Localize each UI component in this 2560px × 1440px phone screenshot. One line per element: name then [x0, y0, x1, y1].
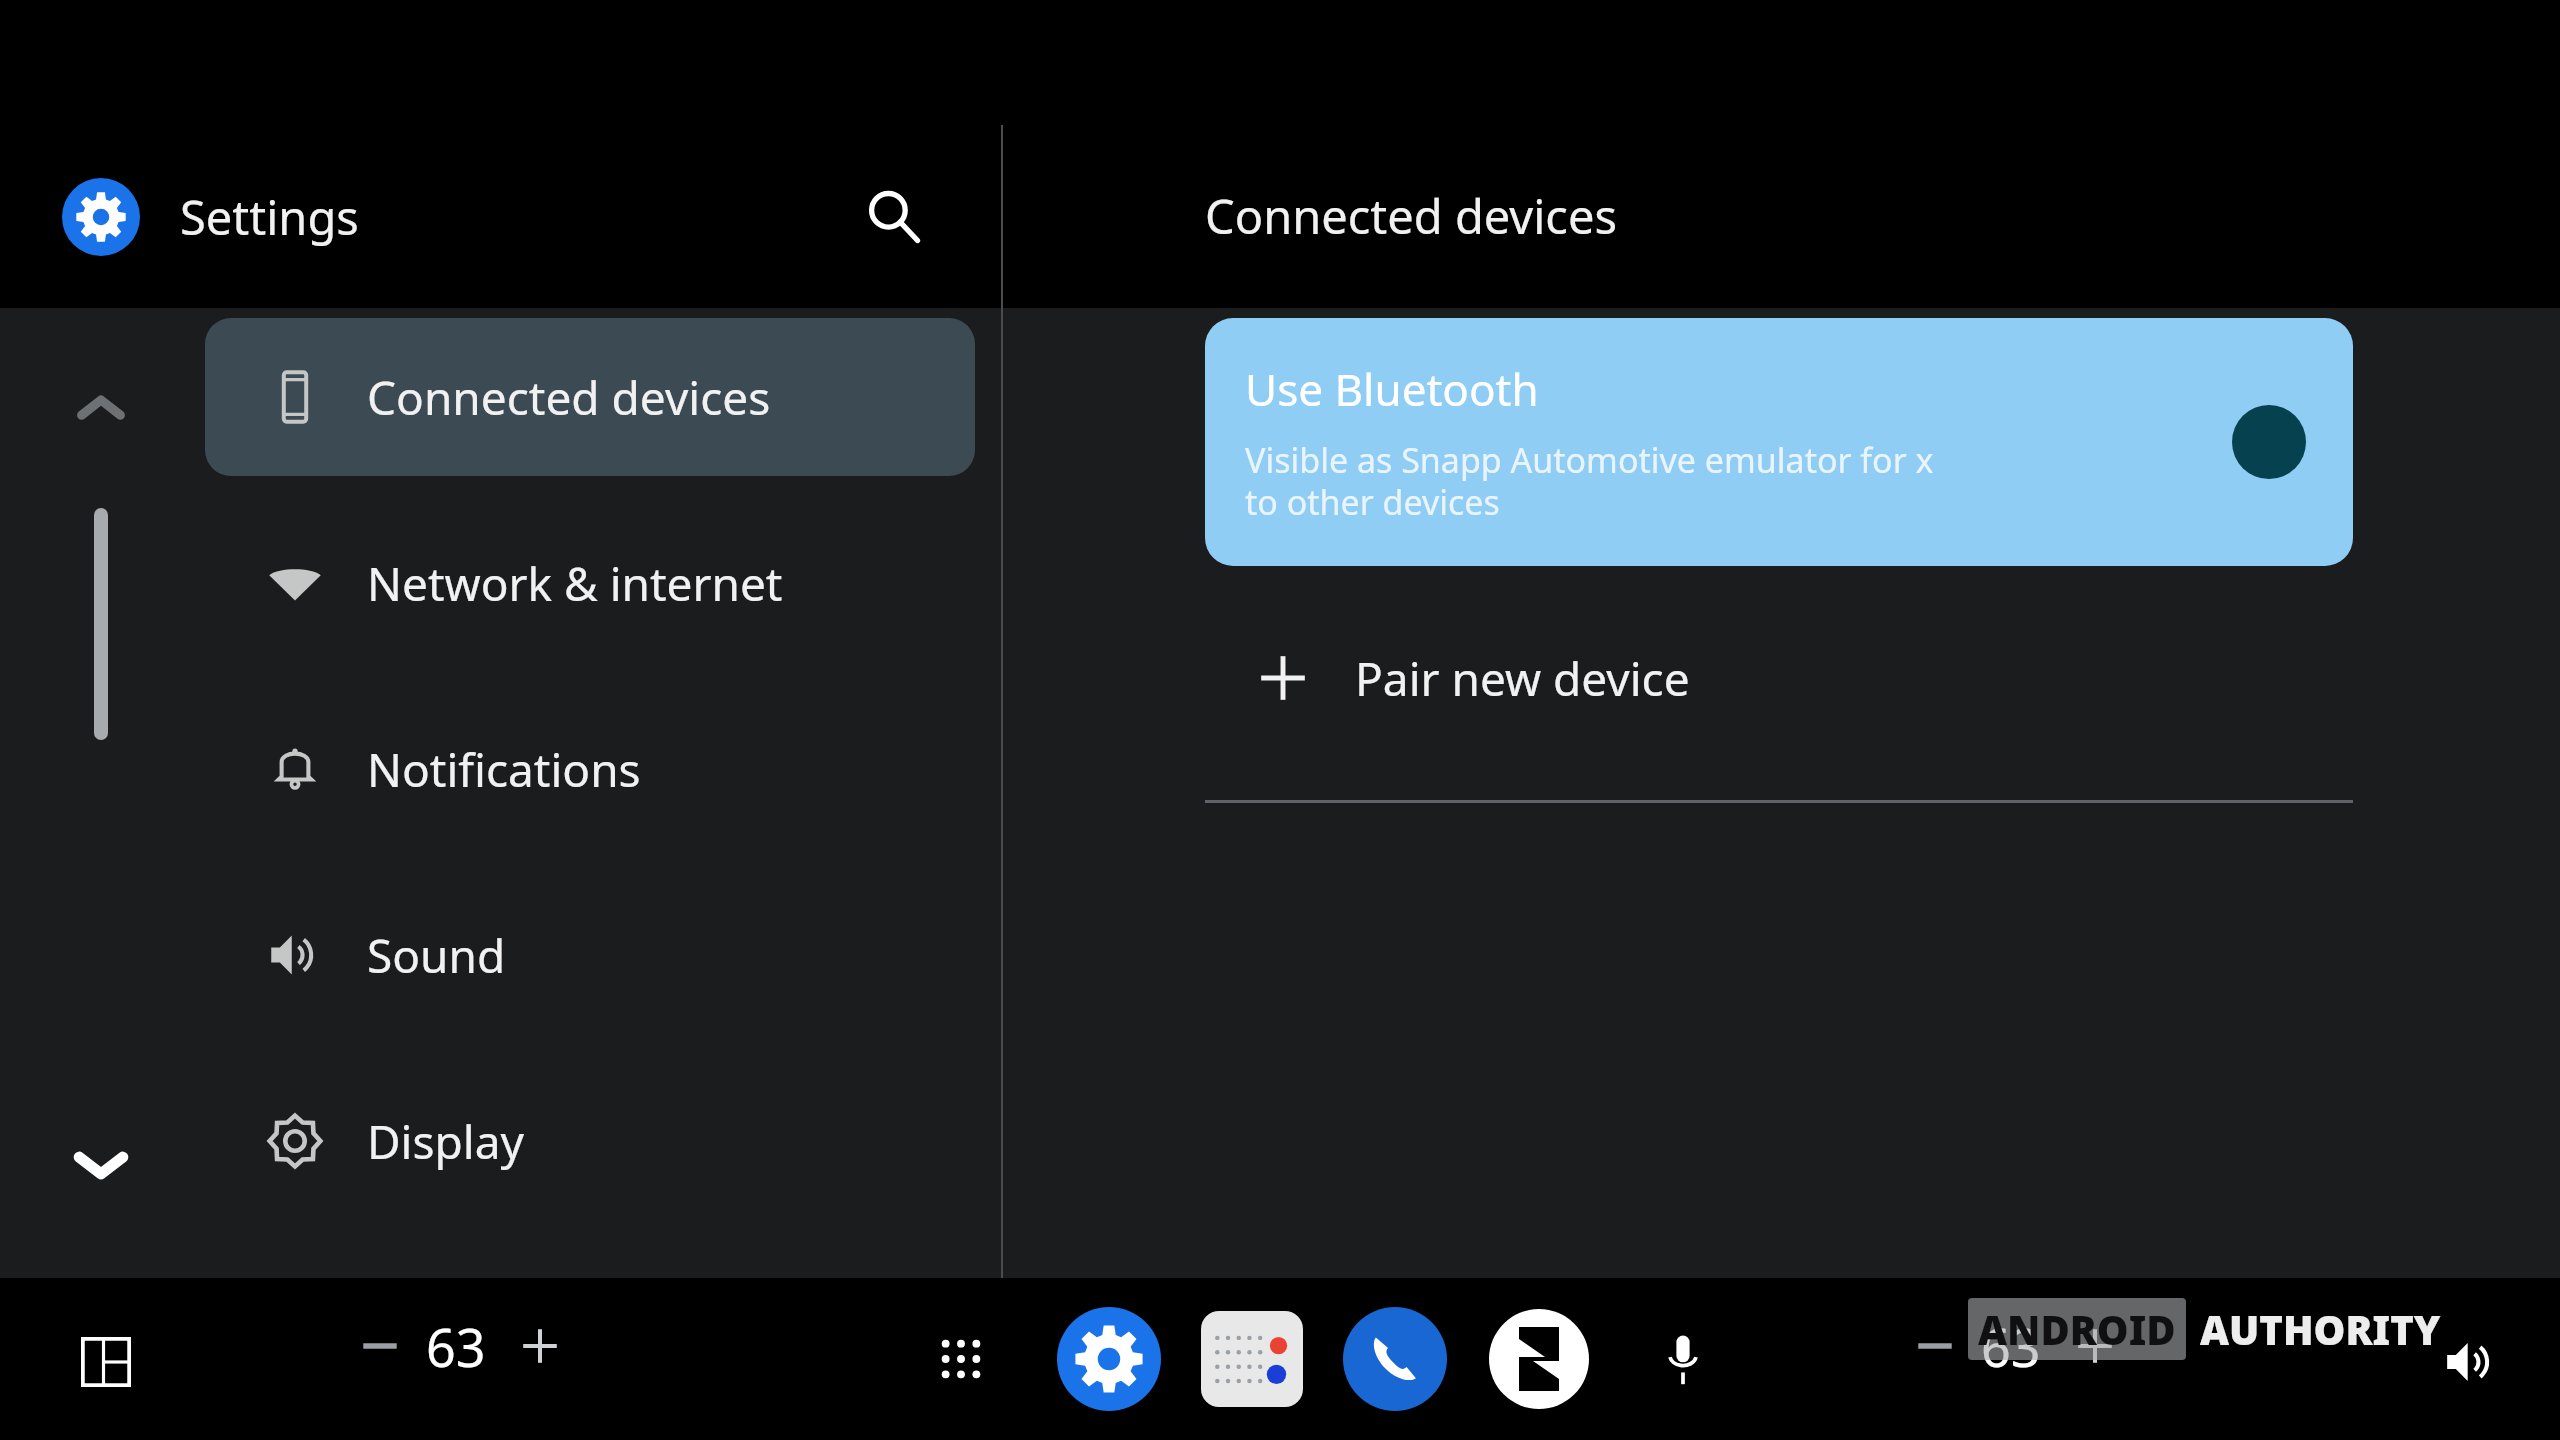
button[interactable]: Notifications	[205, 690, 975, 848]
button[interactable]: Bluetooth toggle, on	[2209, 382, 2329, 502]
button[interactable]: Network & internet	[205, 504, 975, 662]
button[interactable]: Increase passenger temperature	[2055, 1306, 2135, 1386]
button[interactable]: Search settings	[846, 169, 942, 265]
staticText: Profiles & accounts	[367, 1296, 780, 1359]
button[interactable]: Connected devices	[205, 318, 975, 476]
button[interactable]: Increase driver temperature	[500, 1306, 580, 1386]
button[interactable]: All apps	[909, 1307, 1013, 1411]
button[interactable]: Voice assistant	[1635, 1311, 1731, 1407]
button[interactable]: Use Bluetooth	[1205, 318, 2353, 566]
staticText: Network & internet	[367, 552, 783, 615]
staticText: Settings	[180, 185, 359, 249]
staticText: Connected devices	[367, 366, 771, 429]
button[interactable]: Media app	[1201, 1311, 1303, 1407]
button[interactable]: Decrease passenger temperature	[1895, 1306, 1975, 1386]
button[interactable]: Pair new device	[1205, 600, 2353, 756]
button[interactable]: Snapp app	[1487, 1307, 1591, 1411]
staticText: Use Bluetooth	[1245, 359, 1539, 419]
button[interactable]: Scroll down	[75, 1143, 127, 1187]
button[interactable]: Decrease driver temperature	[340, 1306, 420, 1386]
staticText: Visible as Snapp Automotive emulator for…	[1245, 437, 1934, 525]
staticText: 63	[426, 1311, 486, 1382]
staticText: Notifications	[367, 738, 641, 801]
staticText: 63	[1981, 1311, 2041, 1382]
staticText: ANDROID	[1978, 1302, 2176, 1356]
button[interactable]: Scroll up	[78, 388, 124, 428]
staticText: Sound	[367, 924, 506, 987]
button[interactable]: Profiles & accounts	[205, 1248, 975, 1406]
button[interactable]: Sound	[205, 876, 975, 1034]
staticText: Connected devices	[1205, 184, 1617, 248]
button[interactable]: Volume	[2424, 1314, 2520, 1410]
staticText: Pair new device	[1355, 647, 1690, 710]
button[interactable]: Split screen	[60, 1316, 152, 1408]
button[interactable]: Phone	[1343, 1307, 1447, 1411]
button[interactable]: Display	[205, 1062, 975, 1220]
staticText: AUTHORITY	[2200, 1302, 2441, 1356]
staticText: Display	[367, 1110, 524, 1173]
button[interactable]: Settings app	[1057, 1307, 1161, 1411]
